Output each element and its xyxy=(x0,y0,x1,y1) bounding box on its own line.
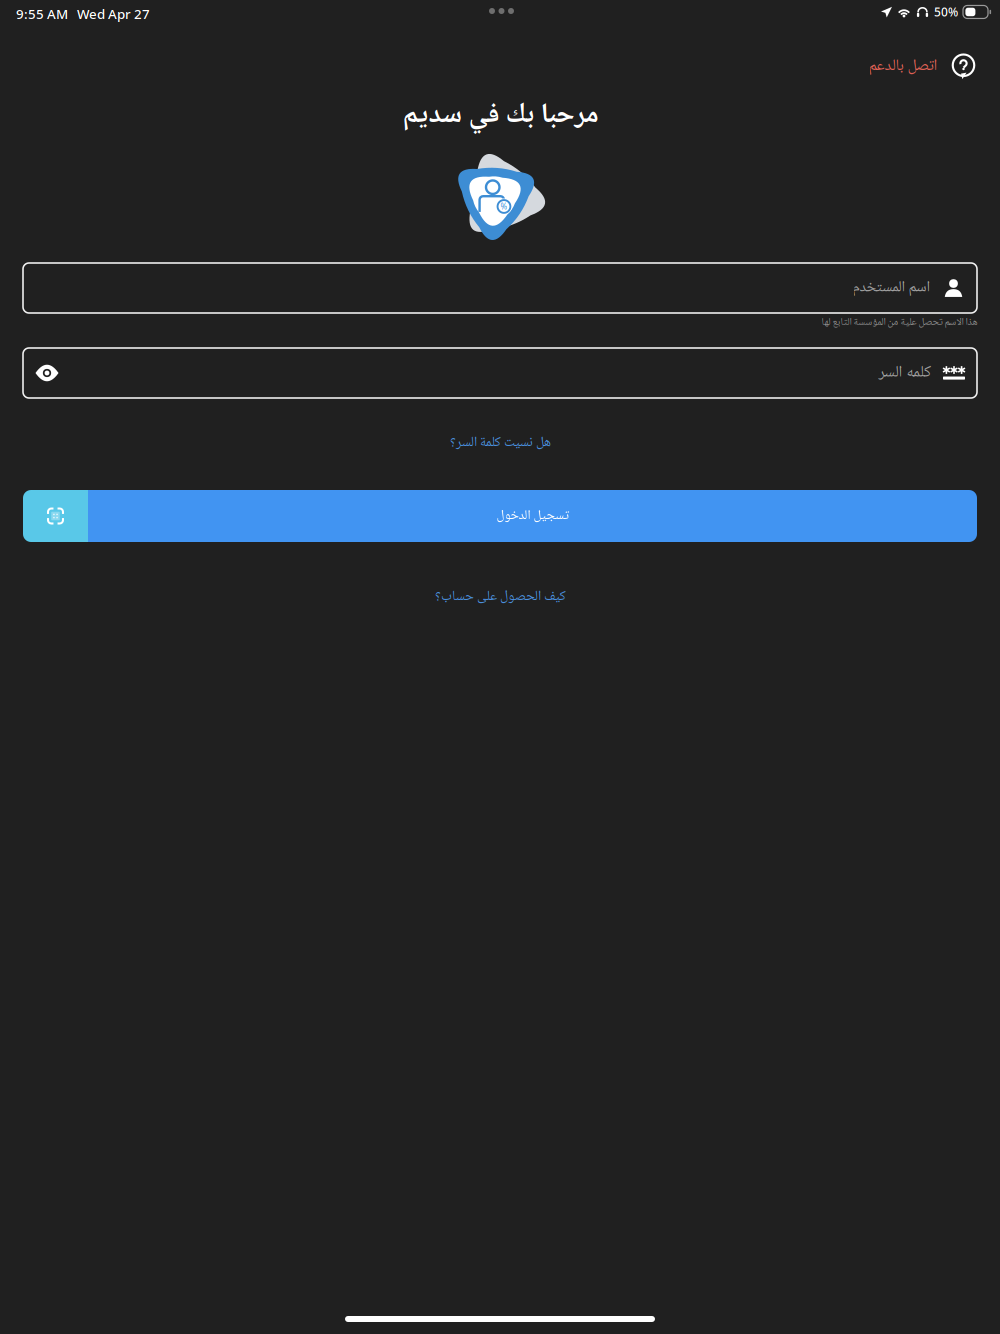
staticText: هذا الاسم تحصل علية من المؤسسة التابع له… xyxy=(821,314,977,331)
staticText: اسم المستخدم xyxy=(852,275,930,301)
staticText: 9:55 AM xyxy=(16,5,68,23)
staticText: اتصل بالدعم xyxy=(868,53,937,80)
staticText: تسجيل الدخول xyxy=(496,505,569,527)
button[interactable]: Scan QR code xyxy=(23,490,88,542)
staticText: كلمه السر xyxy=(878,359,931,387)
button[interactable]: كيف الحصول على حساب؟ xyxy=(420,577,579,617)
staticText: % xyxy=(500,201,507,212)
button[interactable]: اتصل بالدعم xyxy=(862,45,982,88)
button[interactable]: تسجيل الدخول xyxy=(88,490,977,542)
button[interactable]: Show password xyxy=(25,350,69,396)
staticText: هل نسيت كلمة السر؟ xyxy=(449,431,550,455)
button[interactable]: هل نسيت كلمة السر؟ xyxy=(435,423,564,463)
staticText: Wed Apr 27 xyxy=(77,5,150,23)
staticText: 50% xyxy=(934,4,958,20)
button[interactable]: اسم المستخدم xyxy=(23,263,977,313)
staticText: مرحبا بك في سديم xyxy=(402,92,598,140)
staticText: كيف الحصول على حساب؟ xyxy=(434,585,565,609)
